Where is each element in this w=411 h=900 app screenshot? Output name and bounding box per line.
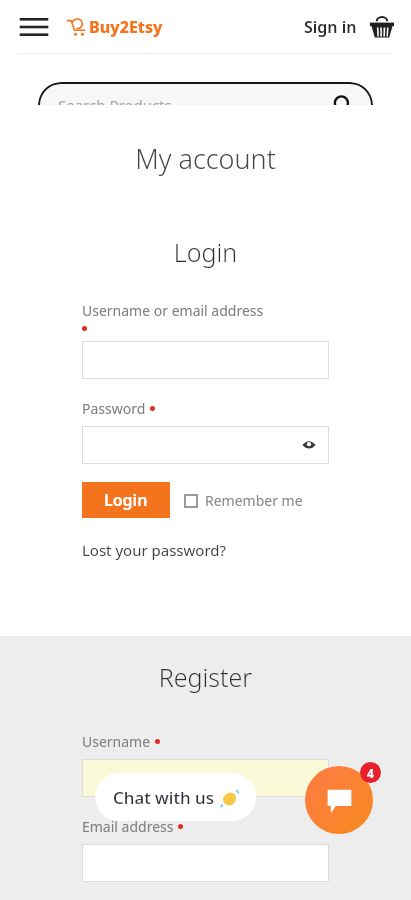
staticText: Search Products... — [58, 95, 184, 115]
button[interactable]: Buy2Etsy — [66, 16, 163, 38]
button[interactable] — [82, 759, 329, 797]
staticText: Username or email address — [82, 301, 264, 320]
other: Show password — [301, 437, 317, 453]
button[interactable]: Open chat — [305, 766, 373, 834]
staticText: Buy2Etsy — [89, 16, 163, 38]
staticText: Lost your password? — [82, 540, 227, 560]
staticText: Sign in — [304, 16, 357, 38]
staticText: Login — [104, 489, 148, 511]
staticText: Login — [82, 235, 329, 269]
button[interactable] — [82, 844, 329, 882]
staticText: Username — [82, 732, 151, 751]
staticText: Register — [0, 660, 411, 694]
staticText: Password — [82, 399, 146, 418]
button[interactable]: Sign in — [302, 10, 359, 44]
button[interactable]: Search Products... — [38, 82, 373, 128]
button[interactable]: Menu — [16, 9, 52, 45]
button[interactable]: Show password — [82, 426, 329, 464]
button[interactable] — [82, 341, 329, 379]
staticText: My account — [0, 140, 411, 177]
staticText: Chat with us — [113, 786, 214, 809]
other: Search — [333, 95, 353, 115]
button[interactable]: Remember me — [184, 491, 303, 510]
button[interactable]: Chat with us — [95, 773, 256, 821]
staticText: 4 — [367, 765, 374, 781]
button[interactable]: Cart — [367, 12, 397, 42]
staticText: Remember me — [205, 491, 303, 510]
staticText: Email address — [82, 817, 174, 836]
button[interactable]: Lost your password? — [82, 540, 227, 560]
button[interactable]: Login — [82, 482, 170, 518]
